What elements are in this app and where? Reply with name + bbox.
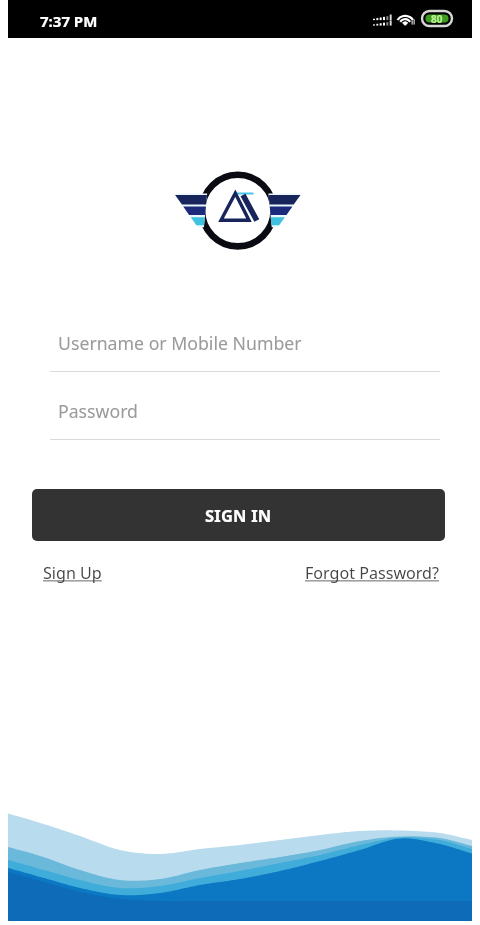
staticText: Username or Mobile Number	[58, 331, 302, 355]
staticText: 7:37 PM	[40, 11, 98, 31]
button[interactable]: SIGN IN	[32, 489, 445, 541]
button[interactable]: Password	[50, 394, 440, 440]
button[interactable]: Sign Up	[43, 562, 102, 584]
button[interactable]: Username or Mobile Number	[50, 326, 440, 372]
staticText: Password	[58, 399, 139, 423]
staticText: 80	[431, 12, 443, 26]
staticText: SIGN IN	[205, 504, 272, 526]
button[interactable]: Forgot Password?	[305, 562, 439, 584]
